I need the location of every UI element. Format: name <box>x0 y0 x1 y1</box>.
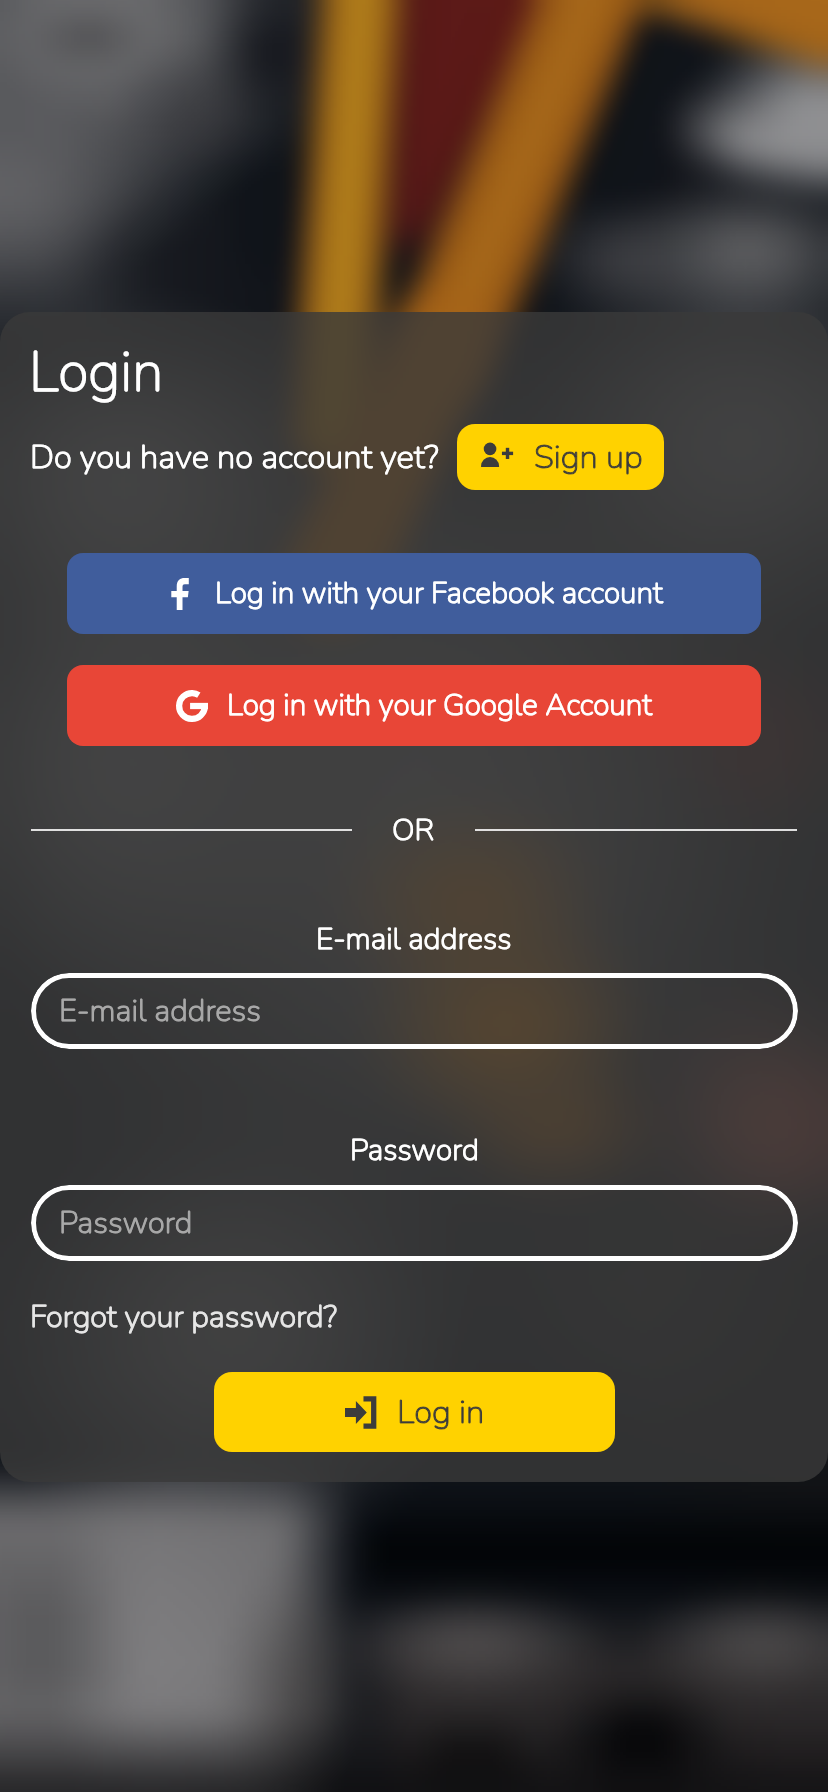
staticText: Log in <box>397 1390 485 1435</box>
button[interactable]: Log in <box>214 1372 615 1452</box>
staticText: Do you have no account yet? <box>30 435 439 480</box>
staticText: Forgot your password? <box>30 1296 338 1338</box>
staticText: Log in with your Facebook account <box>215 573 663 614</box>
button[interactable]: Password <box>31 1185 798 1261</box>
staticText: E-mail address <box>59 990 262 1032</box>
staticText: OR <box>392 810 435 851</box>
button[interactable]: Forgot your password? <box>30 1296 338 1338</box>
staticText: Sign up <box>534 435 643 480</box>
staticText: Password <box>59 1202 193 1244</box>
staticText: Password <box>59 1202 193 1244</box>
staticText: Password <box>350 1130 479 1171</box>
staticText: E-mail address <box>316 919 512 960</box>
button[interactable]: E-mail address <box>31 973 798 1049</box>
button[interactable]: Log in with your Facebook account <box>67 553 761 634</box>
staticText: Log in <box>397 1390 485 1435</box>
staticText: Do you have no account yet? <box>30 435 439 480</box>
staticText: Login <box>29 334 164 410</box>
staticText: Log in with your Facebook account <box>215 573 663 614</box>
staticText: Forgot your password? <box>30 1296 338 1338</box>
staticText: Log in with your Google Account <box>227 685 652 726</box>
button[interactable]: Sign up <box>457 424 664 490</box>
staticText: E-mail address <box>59 990 262 1032</box>
staticText: Sign up <box>534 435 643 480</box>
staticText: Password <box>350 1130 479 1171</box>
staticText: OR <box>392 810 435 851</box>
button[interactable]: Log in with your Google Account <box>67 665 761 746</box>
staticText: Log in with your Google Account <box>227 685 652 726</box>
staticText: E-mail address <box>316 919 512 960</box>
staticText: Login <box>29 334 164 410</box>
